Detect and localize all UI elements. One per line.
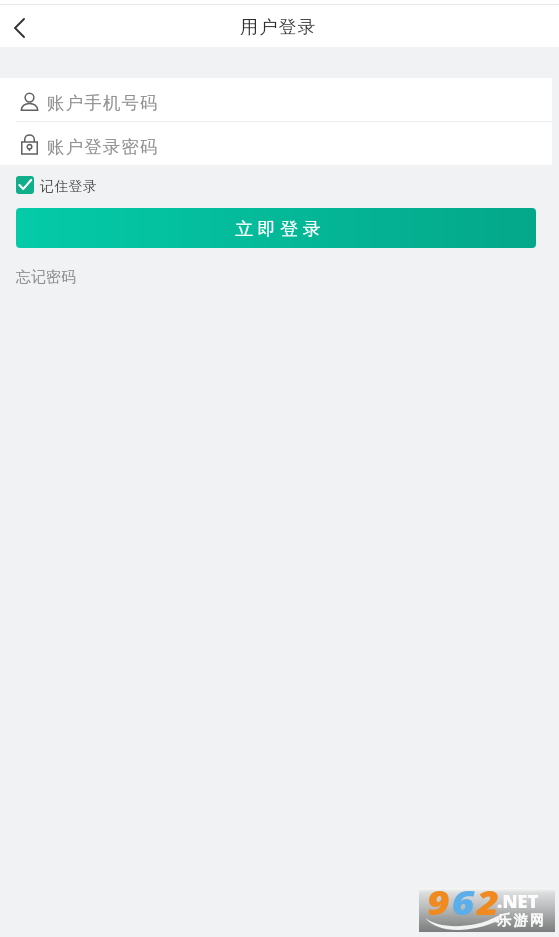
button[interactable]: Back bbox=[0, 7, 39, 49]
staticText: .NET bbox=[497, 889, 539, 914]
staticText: 立即登录 bbox=[233, 218, 323, 241]
staticText: 账户手机号码 bbox=[47, 92, 159, 114]
staticText: 6 bbox=[452, 880, 477, 924]
staticText: 账户登录密码 bbox=[47, 136, 159, 158]
staticText: 9 bbox=[427, 880, 452, 924]
button[interactable]: 立即登录 bbox=[16, 208, 536, 248]
staticText: 乐游网 bbox=[497, 912, 547, 930]
button[interactable]: 忘记密码 bbox=[16, 268, 76, 287]
button[interactable]: 账户登录密码 bbox=[0, 122, 552, 165]
staticText: 忘记密码 bbox=[16, 268, 76, 287]
staticText: 用户登录 bbox=[240, 16, 317, 39]
staticText: 记住登录 bbox=[40, 178, 98, 196]
staticText: 2 bbox=[477, 880, 501, 924]
button[interactable]: 记住登录 bbox=[16, 176, 98, 194]
button[interactable]: 账户手机号码 bbox=[0, 78, 552, 121]
